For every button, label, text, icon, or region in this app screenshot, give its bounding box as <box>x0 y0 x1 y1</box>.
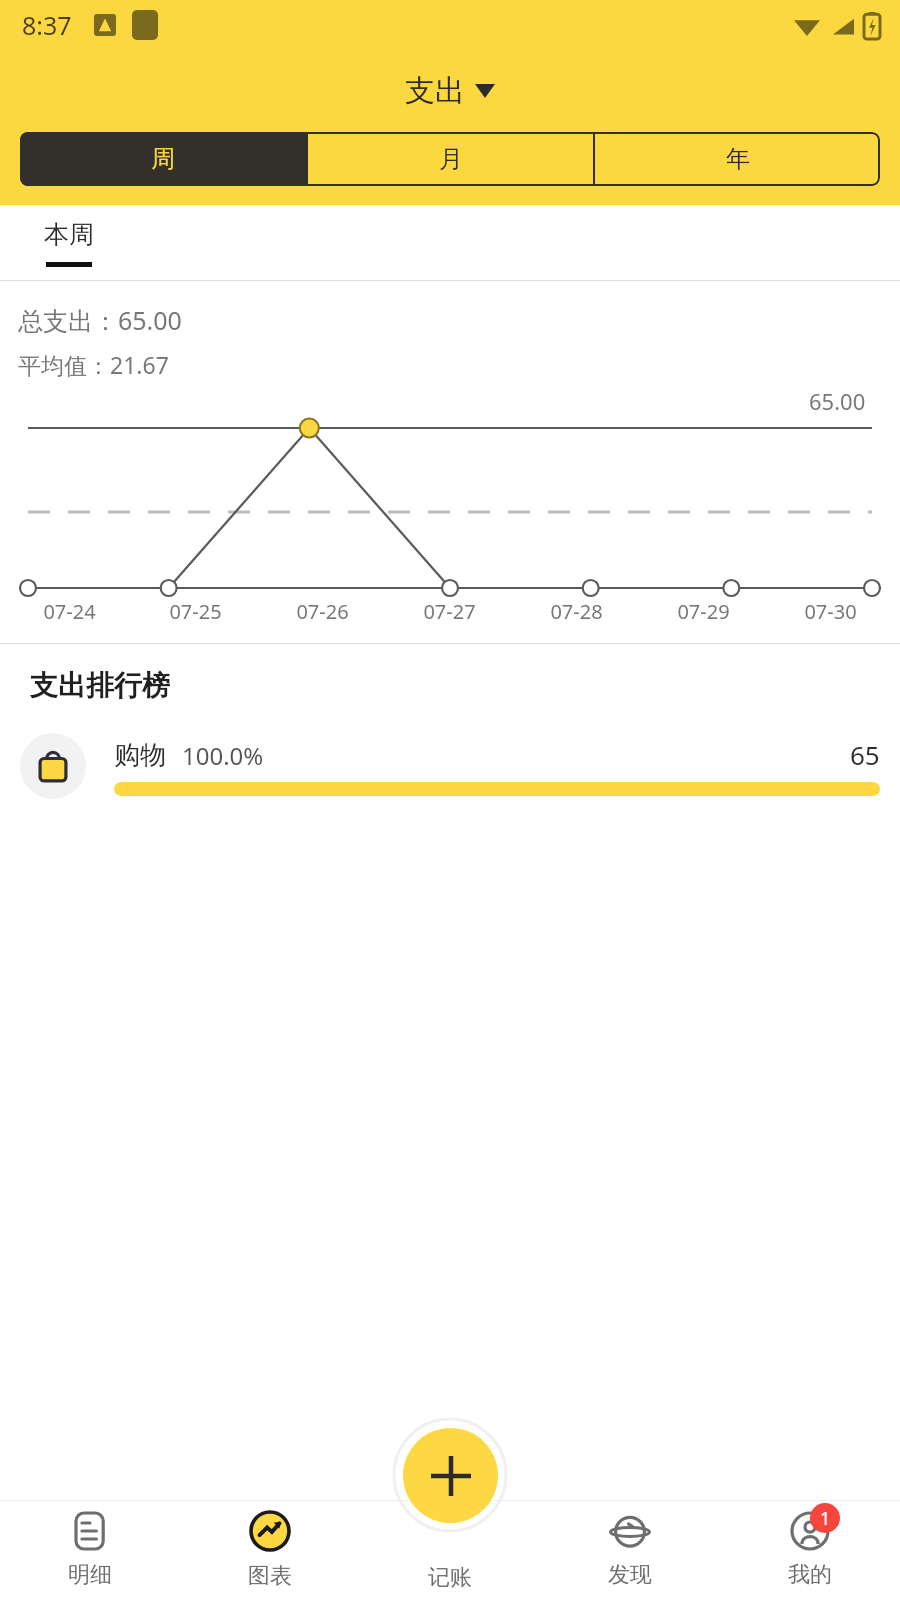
other: 发现 Discover <box>610 1511 650 1551</box>
staticText: 我的 <box>788 1561 832 1589</box>
button[interactable]: 支出 <box>393 66 507 116</box>
button[interactable]: 我的 Profile <box>720 1500 900 1600</box>
staticText: 本周 <box>44 219 94 250</box>
staticText: 07-24 <box>43 598 96 625</box>
staticText: 07-27 <box>423 598 476 625</box>
staticText: 发现 <box>608 1561 652 1589</box>
button[interactable]: 记账 Add record <box>403 1428 498 1523</box>
other: 明细 Details <box>70 1511 110 1551</box>
button[interactable]: 图表 Charts <box>180 1500 360 1600</box>
button[interactable]: 发现 Discover <box>540 1500 720 1600</box>
staticText: 明细 <box>68 1561 112 1589</box>
staticText: 07-30 <box>804 598 857 625</box>
staticText: 07-28 <box>550 598 603 625</box>
staticText: 07-26 <box>296 598 349 625</box>
button[interactable]: 明细 Details <box>0 1500 180 1600</box>
staticText: 记账 <box>428 1564 472 1592</box>
staticText: 购物 <box>114 739 166 772</box>
button[interactable]: 购物 <box>0 729 900 803</box>
staticText: 65 <box>850 737 880 772</box>
button[interactable]: 周 <box>20 132 306 186</box>
button[interactable]: 本周 <box>44 219 94 267</box>
staticText: 平均值：21.67 <box>18 349 169 380</box>
staticText: 1 <box>820 1506 831 1531</box>
staticText: 周 <box>151 144 175 174</box>
staticText: 月 <box>439 144 463 174</box>
staticText: 07-25 <box>169 598 222 625</box>
button[interactable]: 年 <box>595 132 880 186</box>
staticText: 图表 <box>248 1562 292 1590</box>
staticText: 07-29 <box>677 598 730 625</box>
other: 我的 Profile <box>790 1511 830 1551</box>
button[interactable]: 记账 <box>360 1500 540 1600</box>
staticText: 年 <box>726 144 750 174</box>
staticText: 8:37 <box>22 8 72 42</box>
button[interactable]: 月 <box>308 132 593 186</box>
staticText: 65.00 <box>809 386 866 416</box>
other: 图表 Charts <box>249 1510 291 1552</box>
staticText: 总支出：65.00 <box>18 303 182 337</box>
staticText: 100.0% <box>182 739 264 772</box>
staticText: 支出排行榜 <box>30 668 170 703</box>
staticText: 支出 <box>405 72 465 110</box>
